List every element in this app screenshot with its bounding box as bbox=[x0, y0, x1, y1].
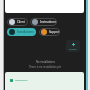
button[interactable]: Installations bbox=[10, 79, 28, 82]
button[interactable]: Installations bbox=[7, 28, 36, 36]
staticText: There is no installation yet bbox=[29, 65, 61, 69]
staticText: Instructions bbox=[40, 20, 57, 24]
staticText: Installations bbox=[15, 79, 28, 82]
staticText: Support bbox=[49, 30, 60, 34]
button[interactable]: Support bbox=[39, 28, 60, 36]
staticText: Installations bbox=[17, 30, 34, 34]
button[interactable]: Instructions bbox=[30, 18, 57, 26]
staticText: No installations bbox=[36, 60, 55, 64]
staticText: Create bbox=[69, 47, 77, 50]
staticText: Client bbox=[17, 20, 25, 24]
button[interactable]: Client bbox=[7, 18, 28, 26]
button[interactable]: Add installation bbox=[66, 40, 80, 52]
